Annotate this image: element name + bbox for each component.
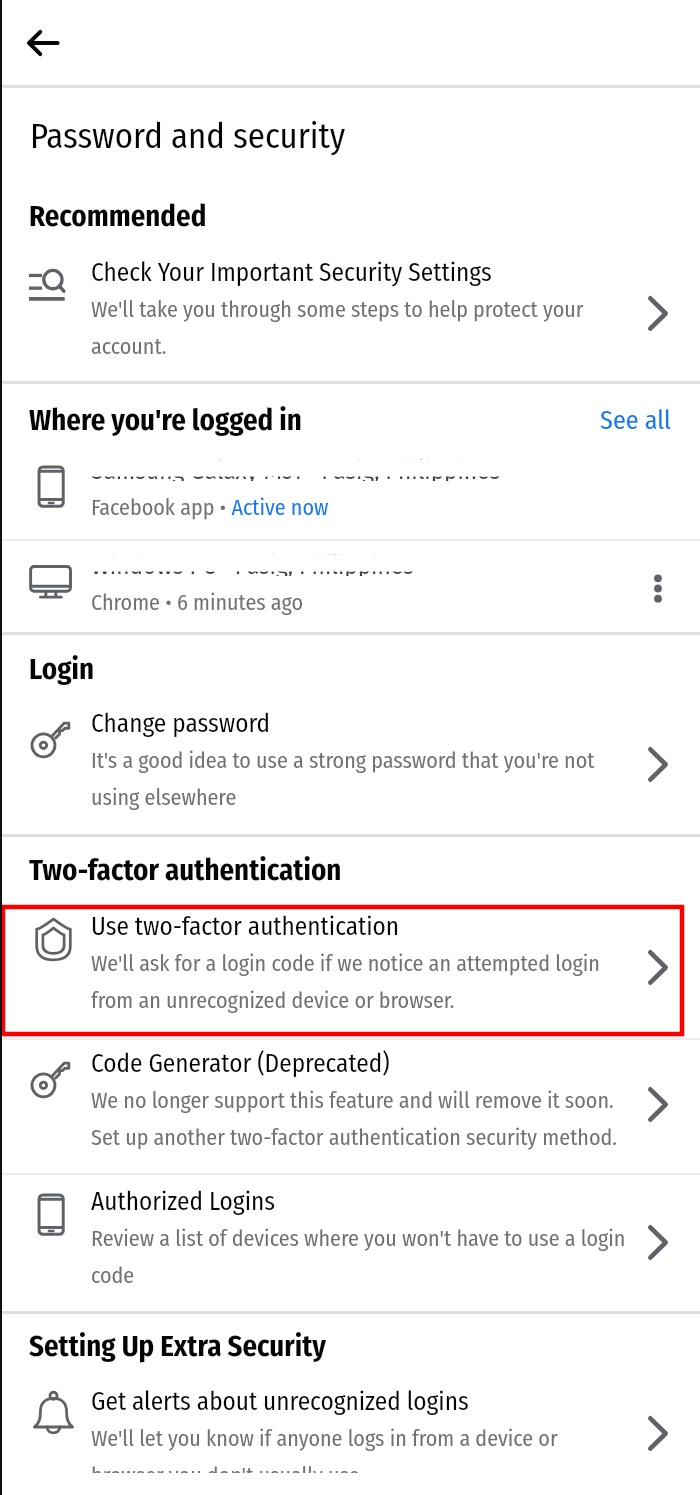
staticText: We'll take you through some steps to hel… xyxy=(91,288,628,362)
staticText: Samsung Galaxy M51 • Pasig, Philippines xyxy=(91,453,501,486)
button[interactable]: Back xyxy=(12,12,74,74)
staticText: Code Generator (Deprecated) xyxy=(91,1046,390,1079)
staticText: Where you're logged in xyxy=(29,403,302,438)
staticText: Chrome • 6 minutes ago xyxy=(91,581,303,618)
button[interactable]: Windows PC • Pasig, Philippines xyxy=(0,541,700,632)
staticText: Facebook app • Active now xyxy=(91,486,329,523)
staticText: We'll let you know if anyone logs in fro… xyxy=(91,1417,628,1473)
button[interactable]: Authorized Logins xyxy=(0,1175,700,1311)
staticText: Authorized Logins xyxy=(91,1184,276,1217)
staticText: Two-factor authentication xyxy=(29,853,342,888)
staticText: Setting Up Extra Security xyxy=(29,1329,327,1364)
staticText: Use two-factor authentication xyxy=(91,909,400,942)
staticText: Login xyxy=(29,652,95,687)
staticText: We no longer support this feature and wi… xyxy=(91,1079,628,1153)
staticText: See all xyxy=(600,405,671,436)
button[interactable]: Code Generator (Deprecated) xyxy=(0,1040,700,1173)
button[interactable]: See all xyxy=(598,403,673,438)
staticText: Password and security xyxy=(30,116,346,158)
button[interactable]: Samsung Galaxy M51 • Pasig, Philippines xyxy=(0,438,700,539)
staticText: It's a good idea to use a strong passwor… xyxy=(91,739,628,813)
button[interactable]: Change password xyxy=(0,687,700,834)
staticText: We'll ask for a login code if we notice … xyxy=(91,942,628,1016)
button[interactable]: Use two-factor authentication xyxy=(0,888,700,1038)
staticText: Change password xyxy=(91,706,270,739)
staticText: Review a list of devices where you won't… xyxy=(91,1217,628,1291)
staticText: Recommended xyxy=(29,199,207,234)
button[interactable]: Get alerts about unrecognized logins xyxy=(0,1364,700,1495)
staticText: Get alerts about unrecognized logins xyxy=(91,1384,469,1417)
button[interactable]: Check Your Important Security Settings xyxy=(0,234,700,381)
staticText: Check Your Important Security Settings xyxy=(91,255,492,288)
staticText: Windows PC • Pasig, Philippines xyxy=(91,548,414,581)
